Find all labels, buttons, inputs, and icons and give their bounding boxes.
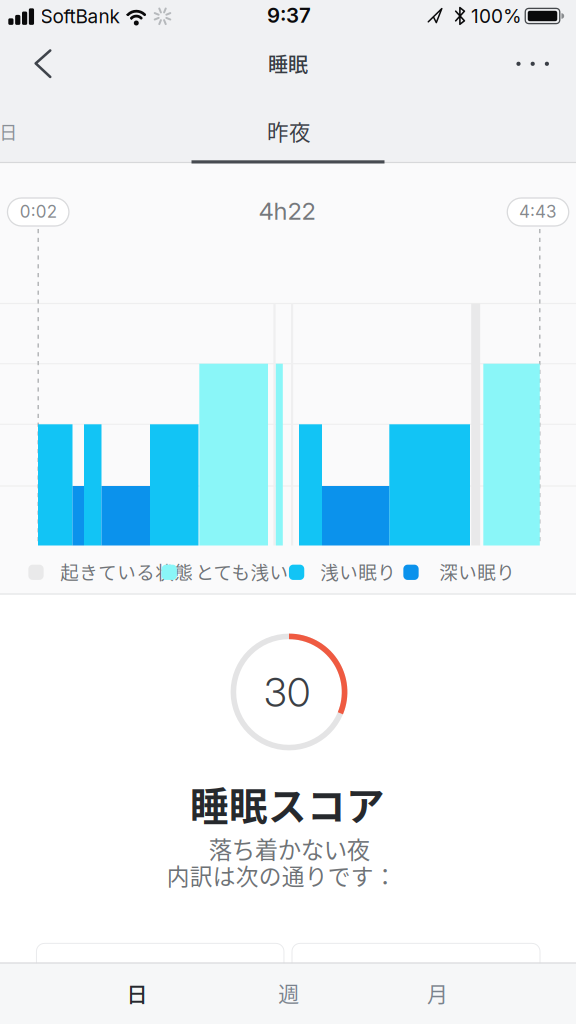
staticText: 日 [126, 977, 147, 1008]
staticText: 4:43 [519, 201, 557, 222]
staticText: 睡眠スコア [190, 776, 385, 831]
staticText: 100% [471, 4, 522, 27]
staticText: 内訳は次の通りです： [167, 859, 397, 891]
staticText: 週 [278, 977, 299, 1008]
button[interactable]: 戻る [25, 40, 62, 88]
staticText: 落ち着かない夜 [209, 832, 370, 865]
staticText: 4h22 [258, 196, 315, 225]
staticText: 日 [0, 118, 17, 144]
staticText: 昨夜 [267, 115, 311, 146]
staticText: 睡眠 [268, 49, 308, 78]
staticText: 深い眠り [439, 558, 515, 585]
staticText: 9:37 [267, 3, 311, 28]
staticText: 0:02 [20, 201, 57, 222]
button[interactable]: 日 [106, 969, 167, 1016]
staticText: とても浅い [195, 558, 288, 585]
button[interactable]: 詳細カード [36, 943, 284, 1003]
staticText: 30 [264, 669, 310, 716]
staticText: SoftBank [40, 5, 119, 28]
button[interactable]: 月 [407, 969, 468, 1016]
button[interactable]: 詳細カード [292, 943, 540, 1003]
staticText: 浅い眠り [320, 558, 396, 585]
staticText: 月 [427, 977, 448, 1008]
button[interactable]: 週 [258, 969, 319, 1016]
button[interactable]: その他 [506, 52, 559, 76]
staticText: 起きている状態 [60, 558, 193, 585]
button[interactable]: 昨夜 [259, 107, 319, 154]
